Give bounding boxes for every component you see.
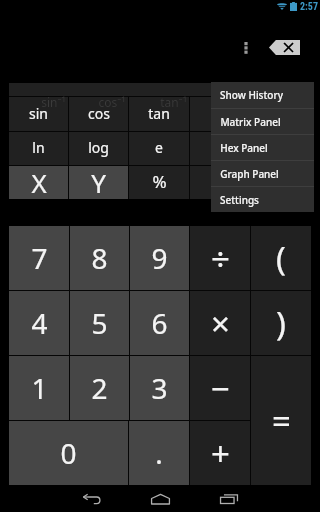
staticText: 4: [31, 304, 48, 342]
button[interactable]: 4: [9, 291, 69, 355]
staticText: Hex Panel: [220, 141, 268, 155]
staticText: 2:57: [300, 1, 318, 13]
staticText: ln: [32, 138, 45, 157]
button[interactable]: 8: [70, 226, 129, 290]
button[interactable]: [190, 132, 250, 165]
staticText: ): [276, 301, 286, 346]
button[interactable]: 6: [130, 291, 189, 355]
staticText: sin⁻¹: [41, 94, 66, 110]
button[interactable]: Graph Panel: [211, 161, 314, 186]
button[interactable]: 7: [9, 226, 69, 290]
staticText: 3: [151, 369, 168, 407]
staticText: ×: [211, 301, 230, 346]
button[interactable]: tan⁻¹: [129, 97, 189, 131]
button[interactable]: +: [190, 421, 250, 485]
button[interactable]: Recent apps: [213, 485, 245, 512]
button[interactable]: Settings: [211, 187, 314, 212]
button[interactable]: log: [69, 132, 128, 165]
staticText: =: [272, 398, 291, 443]
button[interactable]: e: [129, 132, 189, 165]
staticText: sin: [29, 104, 48, 123]
button[interactable]: 0: [9, 421, 128, 485]
button[interactable]: ): [251, 291, 311, 355]
button[interactable]: 9: [130, 226, 189, 290]
staticText: tan: [148, 104, 170, 123]
button[interactable]: ln: [9, 132, 68, 165]
button[interactable]: [190, 97, 250, 131]
staticText: Y: [91, 165, 106, 198]
staticText: cos⁻¹: [98, 94, 126, 110]
staticText: Graph Panel: [220, 167, 279, 181]
button[interactable]: −: [190, 356, 250, 420]
staticText: %: [152, 170, 167, 193]
button[interactable]: 2: [70, 356, 129, 420]
staticText: Show History: [220, 88, 283, 102]
staticText: 0: [60, 434, 77, 472]
button[interactable]: Matrix Panel: [211, 109, 314, 134]
staticText: 9: [151, 239, 168, 277]
staticText: (: [276, 236, 286, 281]
button[interactable]: =: [251, 356, 311, 485]
staticText: tan⁻¹: [160, 94, 187, 110]
button[interactable]: [251, 166, 311, 199]
staticText: Matrix Panel: [220, 115, 281, 129]
button[interactable]: X: [9, 166, 68, 199]
button[interactable]: cos⁻¹: [69, 97, 128, 131]
button[interactable]: 3: [130, 356, 189, 420]
button[interactable]: %: [129, 166, 189, 199]
button[interactable]: 5: [70, 291, 129, 355]
button[interactable]: sin⁻¹: [9, 97, 68, 131]
button[interactable]: ÷: [190, 226, 250, 290]
staticText: log: [88, 138, 109, 157]
button[interactable]: [251, 132, 311, 165]
button[interactable]: .: [129, 421, 189, 485]
button[interactable]: Home: [144, 485, 176, 512]
staticText: 7: [31, 239, 48, 277]
staticText: cos: [88, 104, 110, 123]
button[interactable]: Hex Panel: [211, 135, 314, 160]
button[interactable]: 1: [9, 356, 69, 420]
staticText: e: [155, 138, 163, 157]
button[interactable]: Delete: [262, 34, 306, 60]
staticText: 5: [91, 304, 108, 342]
button[interactable]: [190, 166, 250, 199]
staticText: 2: [91, 369, 108, 407]
button[interactable]: Back: [76, 485, 108, 512]
staticText: ÷: [211, 236, 230, 281]
staticText: Settings: [220, 193, 259, 207]
button[interactable]: [251, 97, 311, 131]
button[interactable]: Show History: [211, 82, 314, 108]
button[interactable]: More options: [234, 35, 258, 61]
staticText: 1: [31, 369, 48, 407]
button[interactable]: ×: [190, 291, 250, 355]
staticText: 6: [151, 304, 168, 342]
staticText: X: [31, 165, 47, 198]
staticText: −: [211, 366, 230, 411]
staticText: 8: [91, 239, 108, 277]
staticText: .: [155, 434, 163, 472]
button[interactable]: (: [251, 226, 311, 290]
staticText: +: [211, 431, 230, 476]
button[interactable]: Y: [69, 166, 128, 199]
